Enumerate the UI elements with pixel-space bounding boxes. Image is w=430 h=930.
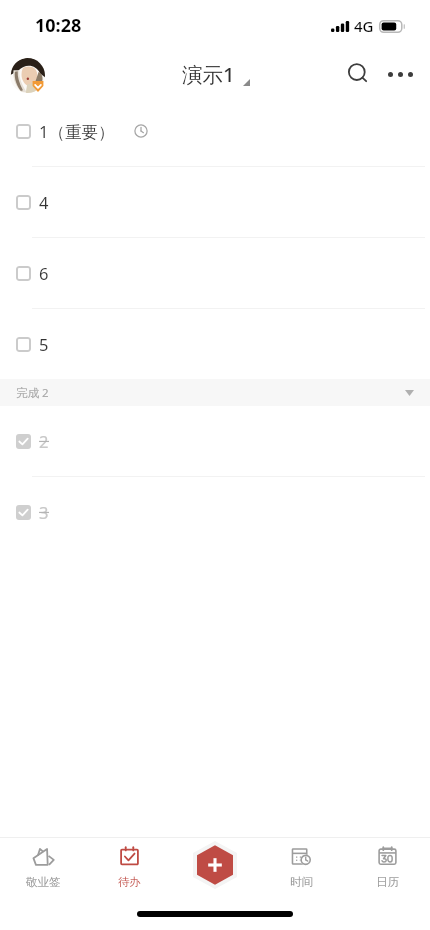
staticText: 6 — [39, 262, 49, 284]
button[interactable]: Profile — [10, 58, 45, 93]
button[interactable]: 2 — [0, 406, 430, 476]
button[interactable]: Search — [337, 53, 379, 95]
staticText: 1（重要） — [39, 120, 115, 143]
staticText: 演示1 — [182, 60, 235, 88]
staticText: 日历 — [376, 875, 399, 889]
staticText: 10:28 — [35, 13, 82, 38]
button[interactable]: 日历 — [344, 838, 430, 900]
staticText: 完成 2 — [16, 385, 49, 401]
staticText: 4G — [354, 16, 374, 36]
staticText: 3 — [39, 501, 49, 523]
staticText: 敬业签 — [26, 875, 61, 889]
button[interactable]: More options — [379, 53, 421, 95]
button[interactable]: 待办 — [86, 838, 172, 900]
staticText: 2 — [39, 430, 49, 452]
button[interactable]: 完成 2 — [0, 379, 430, 406]
button[interactable]: Add — [193, 841, 237, 889]
button[interactable]: 时间 — [258, 838, 344, 900]
button[interactable]: 1（重要） — [0, 96, 430, 166]
button[interactable]: 演示1 — [182, 60, 250, 88]
button[interactable]: 4 — [0, 167, 430, 237]
button[interactable]: 5 — [0, 309, 430, 379]
button[interactable]: 敬业签 — [0, 838, 86, 900]
staticText: 待办 — [118, 875, 141, 889]
button[interactable]: 3 — [0, 477, 430, 547]
staticText: 4 — [39, 191, 49, 213]
staticText: 时间 — [290, 875, 313, 889]
staticText: 5 — [39, 333, 49, 355]
button[interactable]: 6 — [0, 238, 430, 308]
